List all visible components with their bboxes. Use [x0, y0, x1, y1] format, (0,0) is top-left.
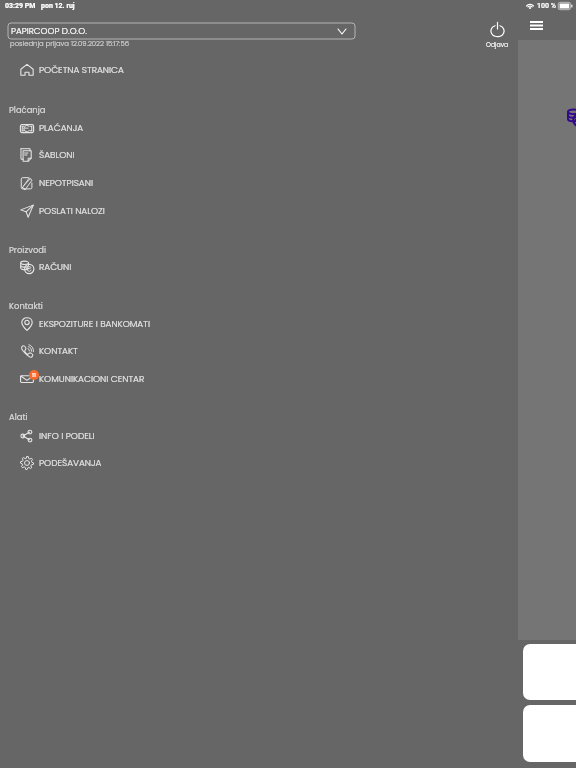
button[interactable]: KONTAKT [0, 337, 518, 365]
staticText: KOMUNIKACIONI CENTAR [39, 373, 145, 386]
staticText: POSLATI NALOZI [39, 205, 105, 218]
staticText: pon 12. ruj [41, 2, 75, 10]
staticText: 11 [32, 371, 36, 379]
staticText: KONTAKT [39, 345, 78, 358]
button[interactable]: POSLATI NALOZI [0, 197, 518, 225]
staticText: Alati [9, 411, 28, 423]
staticText: PAPIRCOOP D.O.O. [11, 25, 87, 37]
button[interactable]: EKSPOZITURE I BANKOMATI [0, 310, 518, 338]
staticText: Odjava [486, 40, 509, 49]
staticText: ŠABLONI [39, 149, 75, 162]
button[interactable]: INFO I PODELI [0, 422, 518, 450]
staticText: 03:29 PM [5, 2, 36, 10]
button[interactable]: ŠABLONI [0, 141, 518, 169]
button[interactable]: PAPIRCOOP D.O.O. [8, 23, 355, 39]
button[interactable]: Odjava [481, 19, 514, 49]
staticText: EKSPOZITURE I BANKOMATI [39, 318, 150, 331]
button[interactable]: PLAĆANJA [0, 114, 518, 142]
staticText: poslednja prijava 12.09.2022 15:17:56 [10, 39, 129, 49]
button[interactable]: 11 [0, 365, 518, 393]
staticText: POČETNA STRANICA [39, 64, 124, 77]
button[interactable]: RAČUNI [0, 253, 518, 281]
staticText: PLAĆANJA [39, 122, 84, 135]
staticText: INFO I PODELI [39, 430, 95, 443]
staticText: PODEŠAVANJA [39, 457, 102, 470]
button[interactable]: NEPOTPISANI [0, 169, 518, 197]
staticText: Plaćanja [9, 104, 46, 116]
staticText: Kontakti [9, 300, 43, 312]
button[interactable]: Open navigation menu [524, 14, 548, 36]
staticText: Proizvodi [9, 244, 47, 256]
staticText: 100 % [537, 2, 556, 10]
staticText: RAČUNI [39, 261, 72, 274]
button[interactable]: POČETNA STRANICA [0, 56, 518, 84]
staticText: NEPOTPISANI [39, 177, 93, 190]
button[interactable]: PODEŠAVANJA [0, 449, 518, 477]
